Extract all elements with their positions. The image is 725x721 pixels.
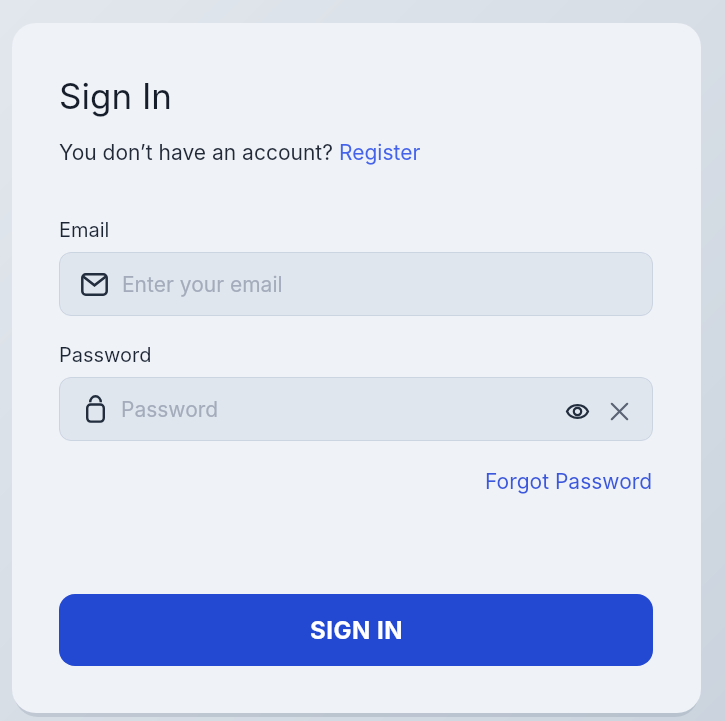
button[interactable]: Register (339, 140, 421, 165)
staticText: You don’t have an account? (59, 140, 339, 165)
button[interactable]: Forgot Password (485, 469, 653, 494)
button[interactable] (602, 394, 636, 428)
button[interactable]: Password (59, 377, 653, 441)
staticText: Email (59, 218, 110, 242)
staticText: Password (59, 343, 152, 367)
staticText: Enter your email (122, 272, 283, 297)
button[interactable]: SIGN IN (59, 594, 653, 666)
staticText: Sign In (59, 75, 172, 117)
staticText: Password (121, 397, 219, 422)
button[interactable] (558, 395, 596, 427)
staticText: SIGN IN (310, 616, 403, 645)
button[interactable]: Enter your email (59, 252, 653, 316)
